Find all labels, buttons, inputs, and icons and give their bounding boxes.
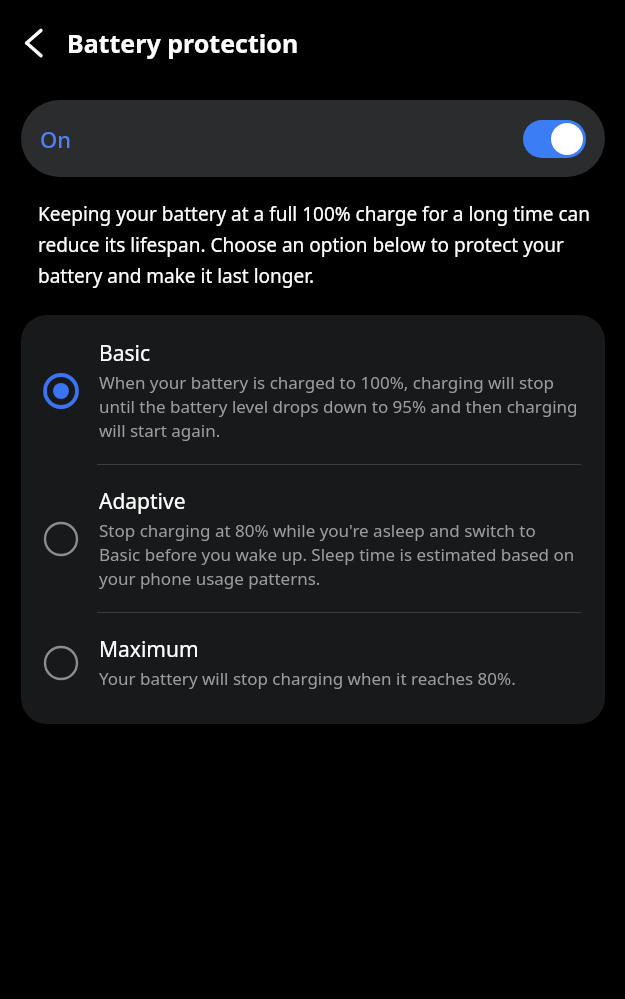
- staticText: Maximum: [99, 635, 199, 664]
- staticText: Battery protection: [67, 26, 299, 60]
- button[interactable]: Battery protection on: [523, 120, 586, 158]
- staticText: Your battery will stop charging when it …: [99, 667, 516, 690]
- button[interactable]: Back: [9, 17, 61, 69]
- staticText: Basic: [99, 339, 150, 368]
- button[interactable]: Adaptive: [21, 465, 605, 612]
- staticText: On: [40, 124, 72, 154]
- staticText: Keeping your battery at a full 100% char…: [38, 201, 605, 289]
- staticText: Stop charging at 80% while you're asleep…: [99, 519, 581, 590]
- button[interactable]: On: [21, 100, 605, 177]
- staticText: Adaptive: [99, 487, 186, 516]
- button[interactable]: Maximum: [21, 613, 605, 724]
- staticText: When your battery is charged to 100%, ch…: [99, 371, 581, 442]
- button[interactable]: Basic: [21, 315, 605, 464]
